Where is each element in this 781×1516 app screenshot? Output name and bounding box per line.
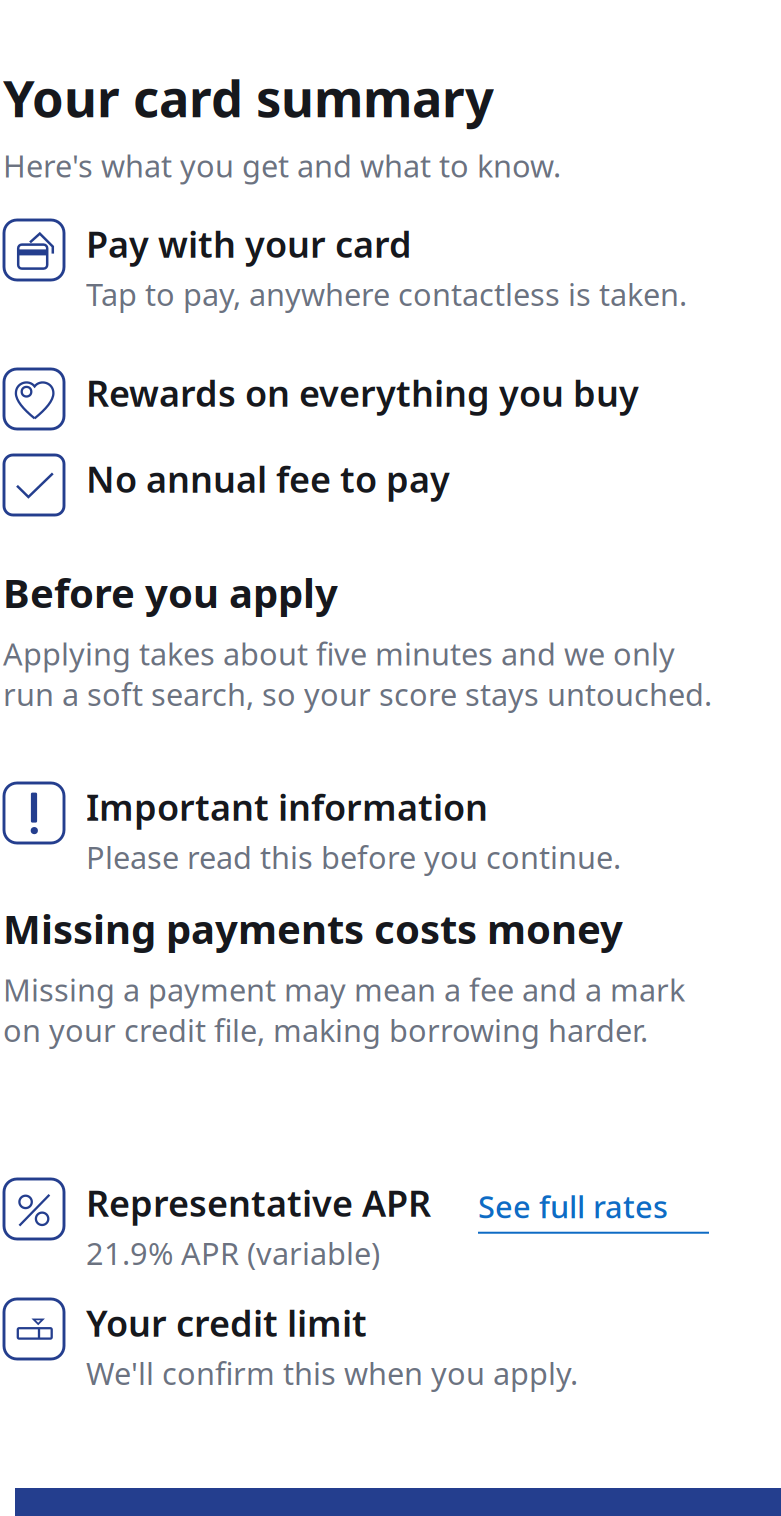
staticText: We'll confirm this when you apply. [86,1353,578,1393]
staticText: See full rates [478,1186,668,1227]
staticText: Missing a payment may mean a fee and a m… [3,969,685,1050]
staticText: Pay with your card [86,220,412,268]
staticText: Applying takes about five minutes and we… [3,633,712,714]
staticText: 21.9% APR (variable) [86,1233,380,1273]
staticText: Missing payments costs money [3,902,623,955]
staticText: Your card summary [3,64,494,131]
staticText: Before you apply [3,566,338,619]
staticText: Please read this before you continue. [86,837,621,877]
button[interactable]: See full rates [478,1186,709,1234]
staticText: No annual fee to pay [86,455,450,503]
staticText: Here's what you get and what to know. [3,145,561,186]
staticText: Tap to pay, anywhere contactless is take… [86,274,687,314]
staticText: Important information [86,783,488,831]
staticText: Representative APR [86,1179,431,1227]
staticText: Your credit limit [86,1299,367,1347]
staticText: Rewards on everything you buy [86,369,639,417]
